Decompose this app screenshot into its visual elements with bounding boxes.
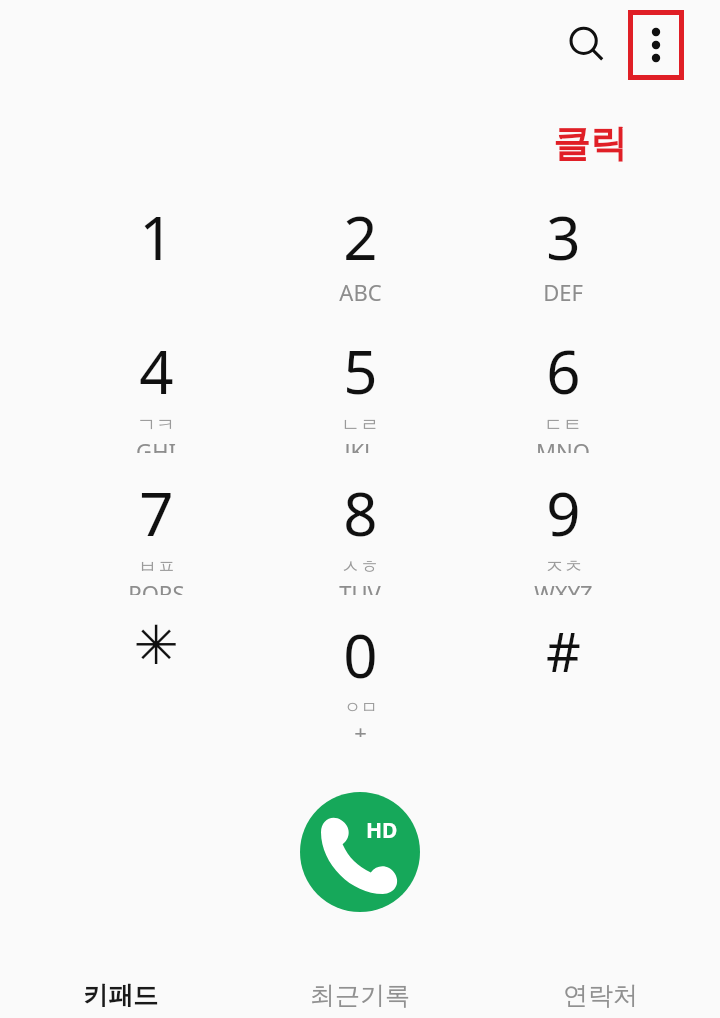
- staticText: ㅅㅎ: [341, 555, 379, 579]
- staticText: WXYZ: [534, 578, 593, 595]
- button[interactable]: 4: [56, 330, 256, 454]
- button[interactable]: 8: [260, 472, 460, 596]
- staticText: 최근기록: [310, 980, 410, 1011]
- staticText: ㄴㄹ: [341, 413, 379, 437]
- staticText: #: [546, 614, 581, 688]
- staticText: ㄱㅋ: [137, 413, 175, 437]
- staticText: ABC: [339, 277, 382, 307]
- button[interactable]: Search: [558, 16, 616, 74]
- staticText: 3: [546, 196, 581, 278]
- button[interactable]: 2: [260, 196, 460, 320]
- button[interactable]: #: [463, 614, 663, 738]
- staticText: 2: [343, 196, 378, 278]
- button[interactable]: 0: [260, 614, 460, 738]
- staticText: 키패드: [83, 980, 158, 1011]
- staticText: TUV: [339, 578, 381, 595]
- staticText: 6: [546, 330, 581, 412]
- staticText: ✳: [133, 614, 179, 677]
- button[interactable]: 6: [463, 330, 663, 454]
- button[interactable]: 연락처: [480, 952, 720, 1018]
- staticText: 연락처: [563, 980, 638, 1011]
- staticText: 7: [139, 472, 174, 554]
- staticText: ㄷㅌ: [544, 413, 582, 437]
- button[interactable]: 5: [260, 330, 460, 454]
- staticText: 9: [546, 472, 581, 554]
- button[interactable]: 최근기록: [240, 952, 480, 1018]
- button[interactable]: More options: [628, 10, 684, 80]
- staticText: 1: [139, 196, 174, 278]
- staticText: ㅇㅁ: [344, 697, 378, 718]
- staticText: 0: [343, 614, 378, 696]
- staticText: JKL: [344, 436, 376, 453]
- staticText: MNO: [536, 436, 590, 453]
- staticText: 클릭: [553, 120, 627, 167]
- button[interactable]: 3: [463, 196, 663, 320]
- staticText: PQRS: [128, 578, 185, 595]
- button[interactable]: Call: [300, 792, 420, 912]
- button[interactable]: 키패드: [0, 952, 240, 1018]
- staticText: ㅂㅍ: [138, 555, 176, 579]
- staticText: ㅈㅊ: [545, 555, 583, 579]
- button[interactable]: 1: [56, 196, 256, 320]
- staticText: HD: [366, 816, 398, 845]
- staticText: 5: [343, 330, 378, 412]
- button[interactable]: 9: [463, 472, 663, 596]
- staticText: GHI: [136, 436, 176, 453]
- staticText: DEF: [543, 277, 583, 307]
- button[interactable]: 7: [56, 472, 256, 596]
- button[interactable]: ✳: [56, 614, 256, 738]
- staticText: 8: [343, 472, 378, 554]
- staticText: +: [354, 717, 367, 737]
- staticText: 4: [139, 330, 174, 412]
